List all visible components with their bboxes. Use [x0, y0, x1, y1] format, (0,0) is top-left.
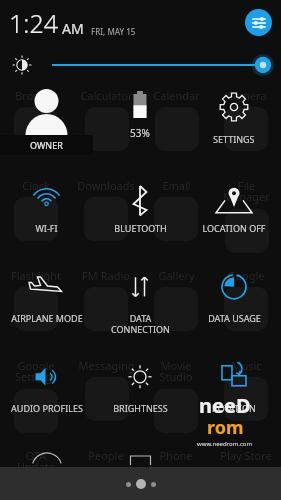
button[interactable]: Quick settings tune [245, 9, 272, 36]
staticText: SETTINGS [213, 133, 255, 145]
button[interactable]: DATA USAGE [187, 265, 281, 355]
button[interactable]: ROTATION [187, 355, 281, 445]
button[interactable]: Battery 53 percent [93, 85, 187, 175]
button[interactable]: Brightness slider [0, 45, 281, 85]
staticText: Play Store [220, 448, 272, 463]
staticText: WI-FI [35, 222, 58, 234]
staticText: AUDIO PROFILES [11, 402, 83, 414]
staticText: Google [227, 268, 265, 283]
staticText: OWNER [30, 139, 63, 151]
button[interactable]: OWNER [0, 85, 93, 175]
staticText: Camera [226, 88, 267, 103]
staticText: FRI, MAY 15 [91, 26, 136, 37]
staticText: BLUETOOTH [114, 222, 167, 234]
staticText: AM [62, 19, 84, 38]
staticText: People [88, 448, 124, 463]
staticText: 53% [130, 126, 150, 140]
button[interactable]: AIRPLANE MODE [0, 265, 93, 355]
staticText: ROTATION [212, 402, 256, 414]
staticText: AIRPLANE MODE [11, 312, 83, 324]
staticText: Gallery [158, 268, 195, 283]
staticText: rom [207, 415, 244, 440]
button[interactable]: BLUETOOTH [93, 175, 187, 265]
staticText: Email [162, 178, 191, 193]
staticText: Clock [22, 178, 50, 193]
button[interactable]: DATA CONNECTION [93, 265, 187, 355]
staticText: File Manager [223, 178, 270, 205]
button[interactable]: LOCATION OFF [187, 175, 281, 265]
staticText: BRIGHTNESS [113, 402, 168, 414]
button[interactable]: BRIGHTNESS [93, 355, 187, 445]
staticText: Downloads [77, 178, 135, 193]
staticText: Messaging [78, 358, 135, 373]
staticText: Calculator [80, 88, 133, 103]
button[interactable]: WI-FI [0, 175, 93, 265]
staticText: neeD [199, 392, 251, 419]
staticText: Browser [15, 88, 58, 103]
button[interactable]: Page indicator [0, 467, 281, 500]
staticText: Phone [159, 448, 193, 463]
staticText: LOCATION OFF [202, 222, 266, 234]
button[interactable]: SETTINGS [187, 85, 281, 175]
staticText: Google Settings [15, 358, 57, 385]
staticText: Music [231, 358, 262, 373]
button[interactable]: AUDIO PROFILES [0, 355, 93, 445]
staticText: Calendar [153, 88, 200, 103]
staticText: Movie Studio [159, 358, 193, 385]
staticText: www.needrom.com [197, 440, 253, 448]
staticText: Flashlight [11, 268, 61, 283]
staticText: DATA USAGE [208, 312, 261, 324]
staticText: FM Radio [82, 268, 130, 283]
staticText: DATA CONNECTION [111, 312, 170, 335]
staticText: OTA Update [17, 448, 55, 475]
staticText: 1:24 [9, 6, 58, 40]
